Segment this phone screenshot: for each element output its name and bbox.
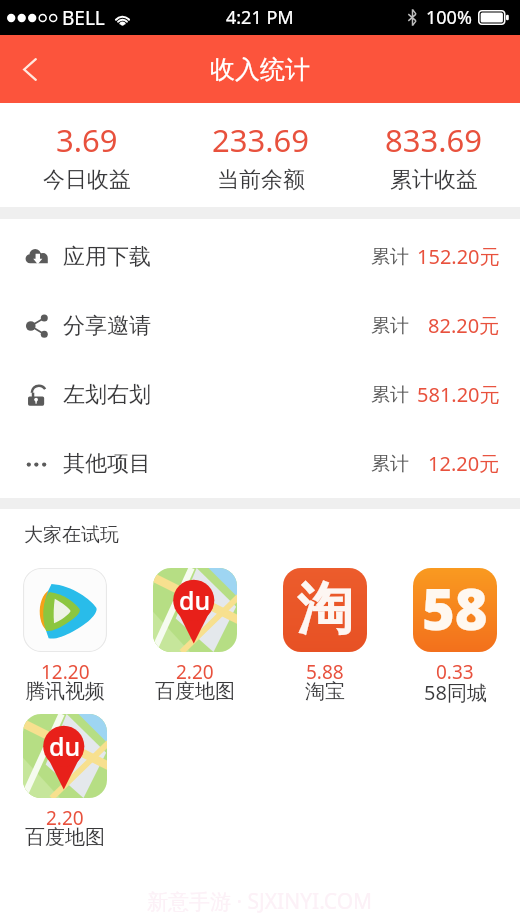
staticText: 左划右划 (63, 381, 151, 409)
button[interactable]: 其他项目 (0, 429, 520, 498)
staticText: 3.69 (56, 119, 118, 161)
button[interactable]: 应用下载 (0, 222, 520, 291)
staticText: 累计收益 (390, 166, 478, 194)
button[interactable]: 分享邀请 (0, 291, 520, 360)
staticText: 淘 (297, 574, 353, 645)
staticText: 当前余额 (217, 166, 305, 194)
staticText: 5.88 (306, 659, 344, 685)
staticText: 12.20 (41, 659, 90, 685)
staticText: 233.69 (212, 119, 309, 161)
staticText: 12.20元 (428, 450, 500, 477)
staticText: 新意手游 · SJXINYI.COM (147, 887, 373, 916)
staticText: BELL (62, 5, 105, 31)
staticText: 应用下载 (63, 243, 151, 271)
staticText: 0.33 (436, 659, 474, 685)
button[interactable]: du (0, 714, 130, 860)
staticText: du (179, 583, 211, 617)
staticText: 百度地图 (25, 825, 105, 850)
staticText: 累计 (371, 314, 409, 338)
staticText: 今日收益 (43, 166, 131, 194)
staticText: 833.69 (385, 119, 482, 161)
staticText: 淘宝 (305, 679, 345, 704)
staticText: 大家在试玩 (24, 523, 119, 547)
button[interactable]: Back (0, 35, 58, 103)
staticText: 百度地图 (155, 679, 235, 704)
button[interactable]: du (130, 568, 260, 714)
button[interactable]: 12.20 (0, 568, 130, 714)
staticText: 82.20元 (428, 312, 500, 339)
staticText: 58 (422, 570, 488, 646)
button[interactable]: 淘 (260, 568, 390, 714)
staticText: 152.20元 (417, 243, 500, 270)
button[interactable]: 58 (390, 568, 520, 714)
staticText: 累计 (371, 245, 409, 269)
button[interactable]: 左划右划 (0, 360, 520, 429)
staticText: 累计 (371, 383, 409, 407)
staticText: 58同城 (424, 679, 487, 706)
staticText: 581.20元 (417, 381, 500, 408)
staticText: 分享邀请 (63, 312, 151, 340)
staticText: 100% (426, 5, 472, 30)
staticText: 累计 (371, 452, 409, 476)
staticText: 4:21 PM (226, 5, 294, 30)
staticText: 收入统计 (210, 54, 310, 85)
staticText: du (49, 729, 81, 763)
staticText: 腾讯视频 (25, 679, 105, 704)
staticText: 2.20 (46, 805, 84, 831)
staticText: 2.20 (176, 659, 214, 685)
staticText: 其他项目 (63, 450, 151, 478)
